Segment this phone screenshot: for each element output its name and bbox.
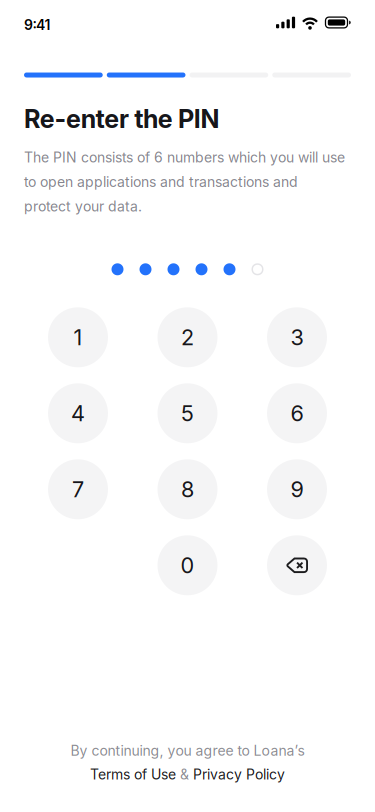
staticText: 7 (72, 476, 84, 502)
staticText: 1 (73, 324, 82, 350)
button[interactable]: 7 (48, 459, 108, 519)
button[interactable]: Terms of Use (90, 766, 176, 783)
staticText: 9:41 (24, 16, 50, 33)
staticText: 8 (181, 476, 194, 502)
staticText: 5 (181, 400, 194, 426)
button[interactable]: 9 (267, 459, 327, 519)
staticText: The PIN consists of 6 numbers which you … (24, 149, 345, 215)
staticText: 9 (290, 476, 303, 502)
button[interactable]: 3 (267, 307, 327, 367)
button[interactable]: Delete (267, 535, 327, 595)
button[interactable]: 1 (48, 307, 108, 367)
button[interactable]: 5 (157, 383, 217, 443)
button[interactable]: 6 (267, 383, 327, 443)
button[interactable]: 8 (157, 459, 217, 519)
staticText: & (180, 766, 189, 783)
button[interactable]: 2 (157, 307, 217, 367)
button[interactable]: 4 (48, 383, 108, 443)
button[interactable]: 0 (157, 535, 217, 595)
staticText: 6 (290, 400, 303, 426)
staticText: 0 (180, 552, 194, 578)
staticText: By continuing, you agree to Loana’s (70, 742, 304, 759)
staticText: Re-enter the PIN (24, 103, 219, 134)
staticText: 2 (181, 324, 194, 350)
staticText: Privacy Policy (193, 766, 285, 783)
staticText: 3 (290, 324, 303, 350)
button[interactable]: Privacy Policy (193, 766, 285, 783)
staticText: 4 (71, 400, 85, 426)
staticText: Terms of Use (90, 766, 176, 783)
